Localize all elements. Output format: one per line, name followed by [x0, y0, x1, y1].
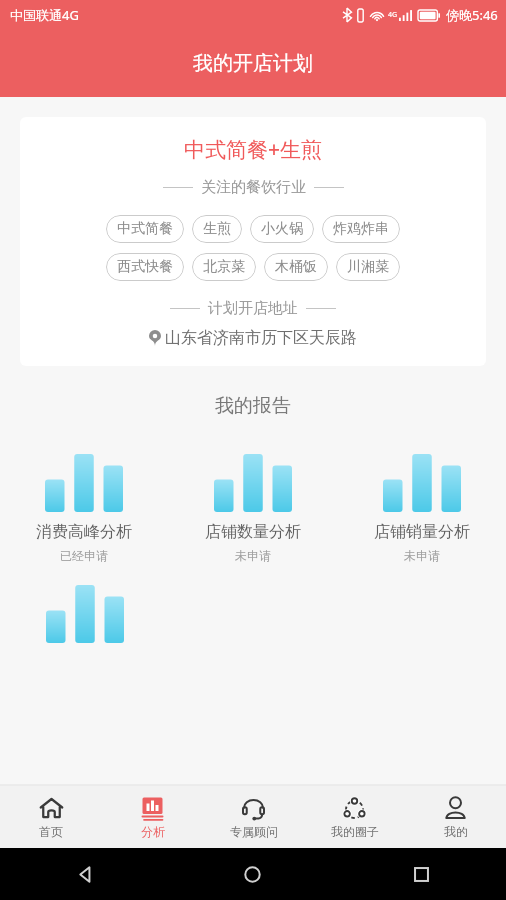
- button[interactable]: 北京菜: [192, 253, 256, 281]
- staticText: 木桶饭: [275, 258, 317, 276]
- staticText: 计划开店地址: [208, 299, 298, 318]
- staticText: 北京菜: [203, 258, 245, 276]
- staticText: 店铺数量分析: [205, 522, 301, 542]
- staticText: 中式简餐: [117, 220, 173, 238]
- staticText: 专属顾问: [230, 824, 278, 839]
- staticText: 已经申请: [60, 548, 108, 563]
- button[interactable]: 分析: [102, 786, 203, 848]
- staticText: 消费高峰分析: [36, 522, 132, 542]
- button[interactable]: 木桶饭: [264, 253, 328, 281]
- staticText: 未申请: [235, 548, 271, 563]
- button[interactable]: 中式简餐+生煎: [20, 117, 486, 366]
- staticText: 关注的餐饮行业: [201, 178, 306, 197]
- staticText: 未申请: [404, 548, 440, 563]
- button[interactable]: 专属顾问: [203, 786, 304, 848]
- staticText: 川湘菜: [347, 258, 389, 276]
- staticText: 首页: [39, 824, 63, 839]
- button[interactable]: 生煎: [192, 215, 242, 243]
- staticText: 山东省济南市历下区天辰路: [165, 328, 357, 348]
- staticText: 傍晚5:46: [446, 6, 498, 24]
- staticText: 我的: [444, 824, 468, 839]
- button[interactable]: [0, 585, 169, 643]
- button[interactable]: 消费高峰分析: [0, 454, 168, 563]
- button[interactable]: 小火锅: [250, 215, 314, 243]
- button[interactable]: 店铺数量分析: [168, 454, 337, 563]
- staticText: 炸鸡炸串: [333, 220, 389, 238]
- button[interactable]: Home: [168, 848, 337, 900]
- staticText: 中国联通4G: [10, 6, 79, 24]
- staticText: 中式简餐+生煎: [184, 135, 323, 164]
- button[interactable]: 店铺销量分析: [337, 454, 506, 563]
- staticText: 我的报告: [0, 394, 506, 418]
- staticText: 分析: [141, 824, 165, 839]
- button[interactable]: 中式简餐: [106, 215, 184, 243]
- staticText: 生煎: [203, 220, 231, 238]
- staticText: 小火锅: [261, 220, 303, 238]
- staticText: 我的开店计划: [193, 51, 313, 76]
- button[interactable]: 炸鸡炸串: [322, 215, 400, 243]
- button[interactable]: 我的圈子: [304, 786, 405, 848]
- staticText: 店铺销量分析: [374, 522, 470, 542]
- button[interactable]: 西式快餐: [106, 253, 184, 281]
- button[interactable]: 我的: [405, 786, 506, 848]
- button[interactable]: 首页: [0, 786, 102, 848]
- button[interactable]: 川湘菜: [336, 253, 400, 281]
- staticText: 我的圈子: [331, 824, 379, 839]
- staticText: 4G: [388, 10, 398, 20]
- button[interactable]: Recents: [337, 848, 506, 900]
- button[interactable]: Back: [0, 848, 168, 900]
- staticText: 西式快餐: [117, 258, 173, 276]
